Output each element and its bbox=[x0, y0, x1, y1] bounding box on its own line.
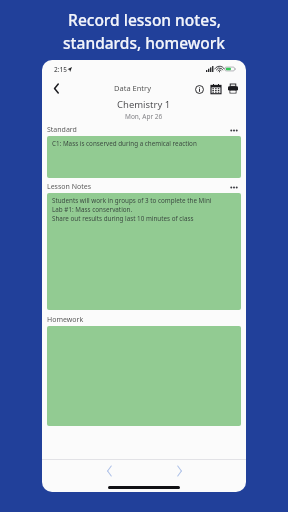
button[interactable]: Print bbox=[225, 81, 240, 96]
button[interactable]: Info bbox=[192, 82, 206, 96]
staticText: Students will work in groups of 3 to com… bbox=[52, 196, 212, 205]
button[interactable]: Back bbox=[48, 80, 64, 96]
staticText: Lab #1: Mass conservation. bbox=[52, 205, 133, 214]
staticText: Chemistry 1 bbox=[117, 98, 171, 111]
staticText: Homework bbox=[47, 315, 84, 325]
button[interactable]: More options for Standard bbox=[227, 125, 241, 135]
staticText: C1: Mass is conserved during a chemical … bbox=[52, 139, 197, 148]
button[interactable]: Next bbox=[170, 462, 188, 480]
button[interactable]: Students will work in groups of 3 to com… bbox=[47, 193, 241, 310]
button[interactable]: C1: Mass is conserved during a chemical … bbox=[47, 136, 241, 178]
staticText: Share out results during last 10 minutes… bbox=[52, 214, 194, 223]
staticText: Mon, Apr 26 bbox=[125, 112, 163, 121]
staticText: Data Entry bbox=[114, 83, 151, 93]
button[interactable]: Calendar bbox=[208, 81, 223, 96]
staticText: standards, homework bbox=[63, 32, 225, 53]
staticText: 2:15 bbox=[54, 65, 67, 74]
staticText: Standard bbox=[47, 125, 77, 135]
button[interactable]: More options for Lesson Notes bbox=[227, 182, 241, 192]
button[interactable]: Previous bbox=[100, 462, 118, 480]
staticText: Lesson Notes bbox=[47, 182, 92, 192]
staticText: Record lesson notes, bbox=[68, 9, 221, 30]
